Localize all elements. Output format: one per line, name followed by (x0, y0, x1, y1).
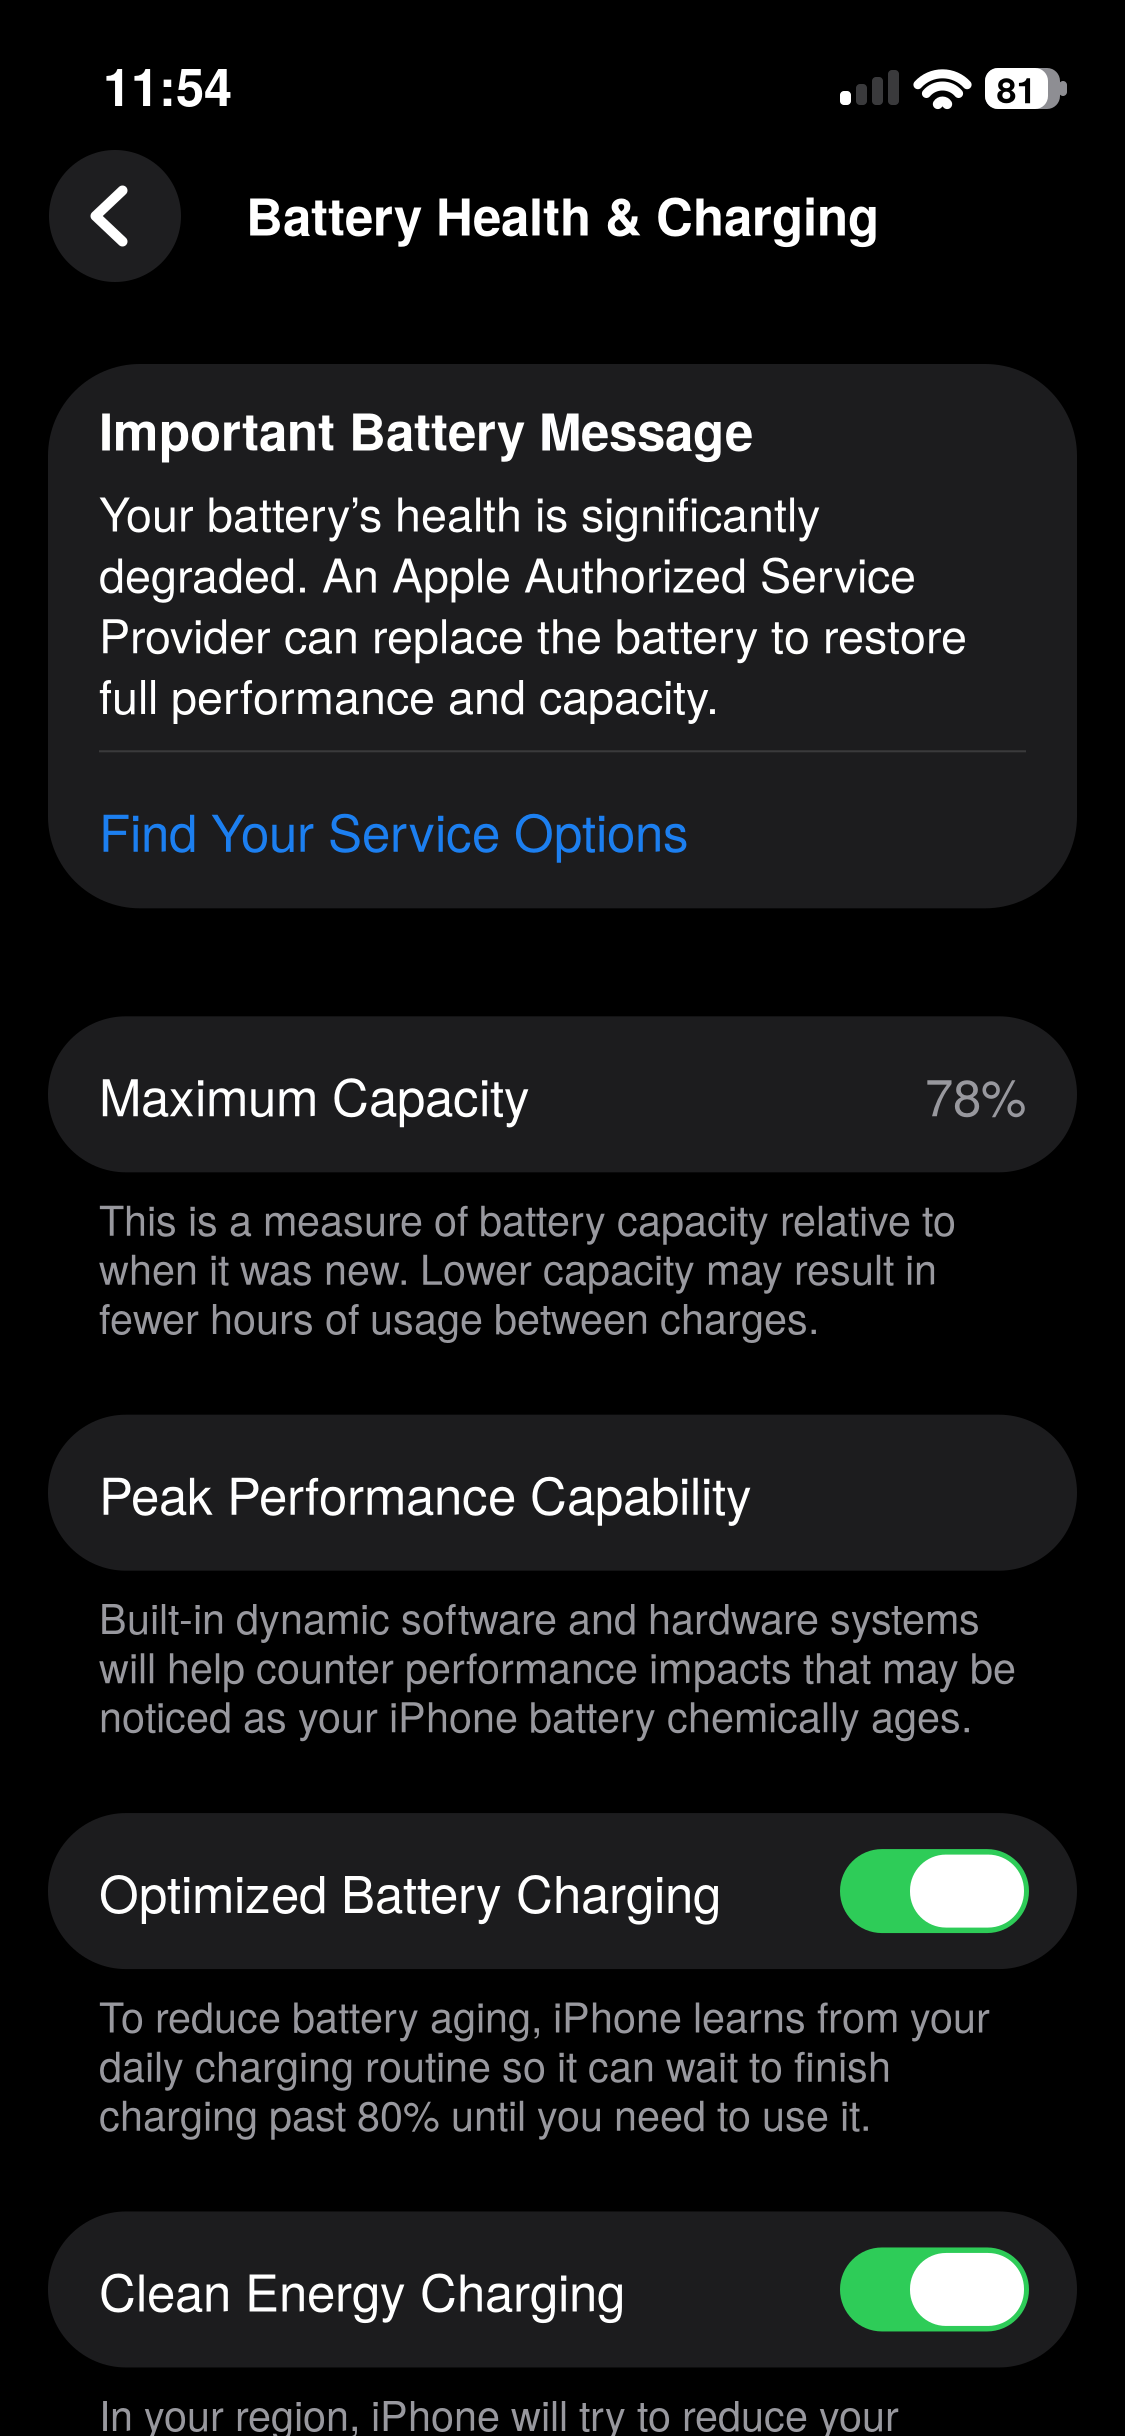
staticText: To reduce battery aging, iPhone learns f… (99, 1990, 990, 2137)
staticText: This is a measure of battery capacity re… (99, 1193, 956, 1341)
button[interactable]: Optimized Battery Charging (48, 1813, 1077, 1969)
button[interactable]: Clean Energy Charging (48, 2211, 1077, 2367)
staticText: Optimized Battery Charging (99, 1855, 721, 1928)
staticText: 78% (925, 1058, 1026, 1131)
button[interactable]: Maximum Capacity (48, 1016, 1077, 1172)
staticText: 11:54 (103, 49, 232, 122)
staticText: Find Your Service Options (99, 793, 689, 866)
staticText: Maximum Capacity (99, 1058, 530, 1131)
staticText: Important Battery Message (99, 393, 753, 466)
button[interactable]: Peak Performance Capability (48, 1415, 1077, 1571)
staticText: Clean Energy Charging (99, 2253, 625, 2326)
staticText: Battery Health & Charging (246, 178, 879, 251)
button[interactable]: Back (49, 150, 181, 282)
staticText: In your region, iPhone will try to reduc… (99, 2388, 920, 2436)
staticText: Peak Performance Capability (99, 1456, 752, 1529)
staticText: 81 (996, 63, 1036, 114)
staticText: Built-in dynamic software and hardware s… (99, 1592, 1016, 1739)
button[interactable]: Find Your Service Options (99, 752, 1026, 908)
staticText: Your battery’s health is significantly d… (99, 481, 967, 724)
